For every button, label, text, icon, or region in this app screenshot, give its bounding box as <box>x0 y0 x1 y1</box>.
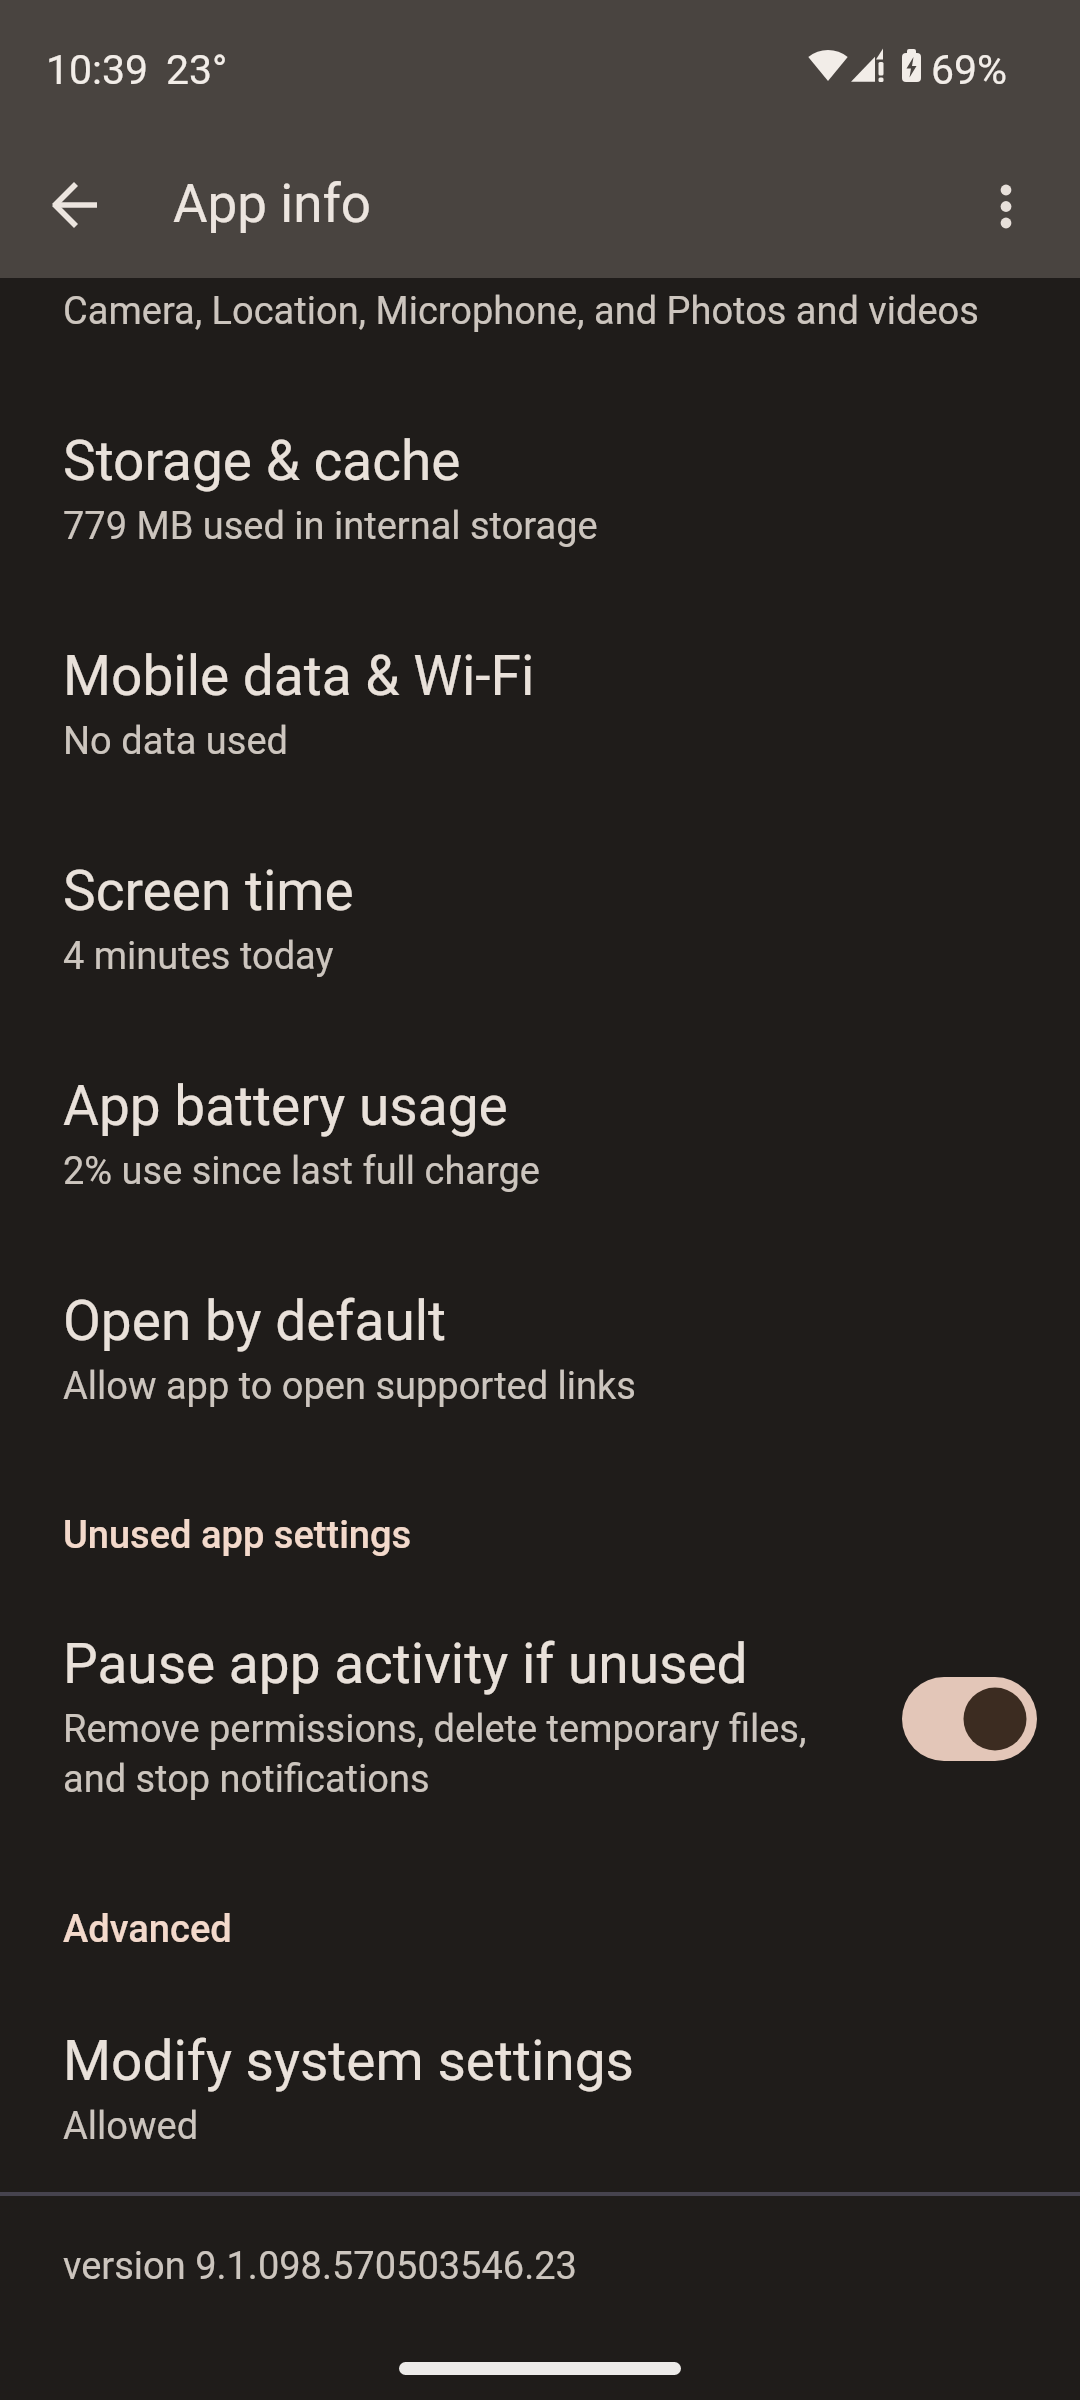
staticText: version 9.1.098.570503546.23 <box>63 2244 577 2289</box>
staticText: Open by default <box>63 1289 447 1353</box>
staticText: Modify system settings <box>63 2029 634 2093</box>
staticText: 4 minutes today <box>63 934 334 979</box>
button[interactable]: Pause app activity if unused <box>0 1582 1080 1854</box>
staticText: Advanced <box>63 1907 232 1952</box>
staticText: Allow app to open supported links <box>63 1364 636 1409</box>
staticText: Mobile data & Wi-Fi <box>63 644 535 708</box>
button[interactable] <box>23 153 127 257</box>
button[interactable]: Mobile data & Wi-Fi <box>0 594 1080 809</box>
staticText: Unused app settings <box>63 1513 412 1558</box>
staticText: 10:39 <box>46 46 149 94</box>
staticText: No data used <box>63 719 288 764</box>
staticText: Allowed <box>63 2104 199 2149</box>
button[interactable] <box>954 154 1058 258</box>
staticText: Pause app activity if unused <box>63 1632 748 1696</box>
staticText: Camera, Location, Microphone, and Photos… <box>63 289 979 334</box>
staticText: and stop notifications <box>63 1757 430 1802</box>
staticText: App info <box>173 173 372 235</box>
staticText: App battery usage <box>63 1074 508 1138</box>
button[interactable]: Screen time <box>0 809 1080 1024</box>
button[interactable]: App battery usage <box>0 1024 1080 1239</box>
staticText: 69% <box>931 46 1008 94</box>
staticText: 23° <box>166 46 228 94</box>
staticText: Remove permissions, delete temporary fil… <box>63 1707 807 1752</box>
staticText: Storage & cache <box>63 429 461 493</box>
staticText: Screen time <box>63 859 354 923</box>
button[interactable]: Modify system settings <box>0 1979 1080 2194</box>
staticText: 779 MB used in internal storage <box>63 504 598 549</box>
button[interactable]: Open by default <box>0 1239 1080 1454</box>
button[interactable]: Storage & cache <box>0 379 1080 594</box>
staticText: 2% use since last full charge <box>63 1149 541 1194</box>
